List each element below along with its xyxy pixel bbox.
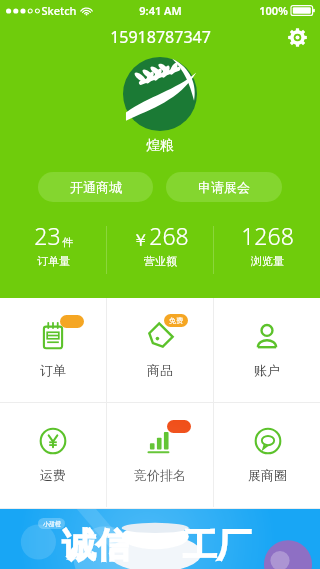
button[interactable]: 展商圈 bbox=[214, 403, 320, 507]
staticText: Sketch bbox=[41, 3, 77, 18]
button[interactable]: ￥ bbox=[107, 220, 213, 268]
staticText: 浏览量 bbox=[251, 254, 284, 268]
button[interactable]: 账户 bbox=[214, 298, 320, 402]
staticText: 小甜橙 bbox=[43, 520, 61, 528]
button[interactable]: 申请展会 bbox=[166, 172, 282, 202]
button[interactable]: 免费 bbox=[107, 298, 213, 402]
staticText: 诚信 bbox=[62, 524, 130, 567]
staticText: 免费 bbox=[169, 316, 183, 325]
staticText: 1268 bbox=[241, 220, 294, 251]
staticText: 开通商城 bbox=[70, 179, 122, 195]
staticText: 订单量 bbox=[37, 254, 70, 268]
button[interactable]: 23 bbox=[0, 220, 106, 268]
staticText: ￥ bbox=[132, 230, 149, 251]
button[interactable]: 订单 bbox=[0, 298, 106, 402]
staticText: 账户 bbox=[254, 362, 280, 378]
staticText: 件 bbox=[62, 235, 73, 249]
staticText: 煌粮 bbox=[146, 137, 174, 155]
button[interactable]: Settings bbox=[282, 22, 312, 52]
button[interactable]: 1268 bbox=[214, 220, 320, 268]
button[interactable]: 开通商城 bbox=[38, 172, 153, 202]
button[interactable]: 运费 bbox=[0, 403, 106, 507]
button[interactable]: 竞价排名 bbox=[107, 403, 213, 507]
staticText: 工厂 bbox=[183, 524, 251, 567]
staticText: 营业额 bbox=[144, 254, 177, 268]
staticText: 运费 bbox=[40, 467, 66, 483]
staticText: 23 bbox=[34, 220, 61, 251]
button[interactable]: 小甜橙 bbox=[0, 509, 320, 569]
staticText: 100% bbox=[259, 3, 288, 18]
staticText: 15918787347 bbox=[110, 26, 211, 48]
staticText: 9:41 AM bbox=[139, 3, 182, 18]
staticText: 展商圈 bbox=[248, 467, 287, 483]
staticText: 商品 bbox=[147, 362, 173, 378]
staticText: 268 bbox=[149, 220, 189, 251]
staticText: 订单 bbox=[40, 362, 66, 378]
staticText: 申请展会 bbox=[198, 179, 250, 195]
staticText: 竞价排名 bbox=[134, 467, 186, 483]
